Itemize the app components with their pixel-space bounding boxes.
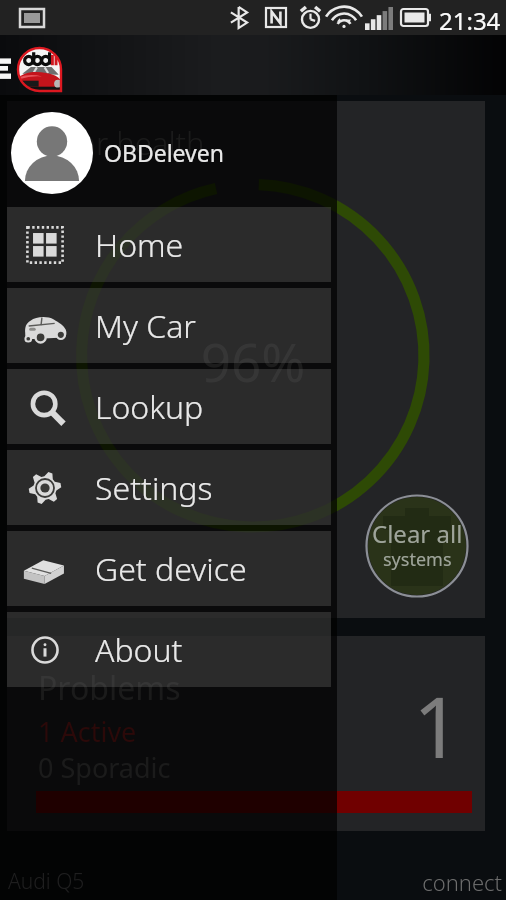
button[interactable]: My Car <box>7 288 331 363</box>
button[interactable]: Lookup <box>7 369 331 444</box>
staticText: Car health <box>60 122 205 164</box>
button[interactable]: Get device <box>7 531 331 606</box>
staticText: connected <box>411 867 502 900</box>
button[interactable]: Home <box>7 207 331 282</box>
button[interactable]: OBDeleven logo <box>18 48 61 91</box>
staticText: 21:34 <box>439 4 501 37</box>
staticText: Problems <box>38 666 181 710</box>
staticText: Settings <box>95 466 213 510</box>
staticText: 1 Active <box>38 713 137 750</box>
staticText: My Car <box>95 304 196 348</box>
staticText: OBDeleven <box>104 137 224 168</box>
staticText: About <box>95 628 183 672</box>
staticText: systems <box>383 547 452 572</box>
staticText: Lookup <box>95 385 204 429</box>
button[interactable]: Open navigation drawer <box>0 53 20 78</box>
staticText: Home <box>95 223 184 267</box>
staticText: 0 Sporadic <box>38 749 171 786</box>
button[interactable]: Clear all <box>365 494 469 598</box>
staticText: Clear all <box>372 517 463 550</box>
staticText: Get device <box>95 547 247 591</box>
button[interactable]: About <box>7 612 331 687</box>
staticText: Audi Q5 <box>8 867 85 896</box>
button[interactable]: Settings <box>7 450 331 525</box>
staticText: 1 <box>407 668 467 782</box>
staticText: 96% <box>188 325 318 397</box>
